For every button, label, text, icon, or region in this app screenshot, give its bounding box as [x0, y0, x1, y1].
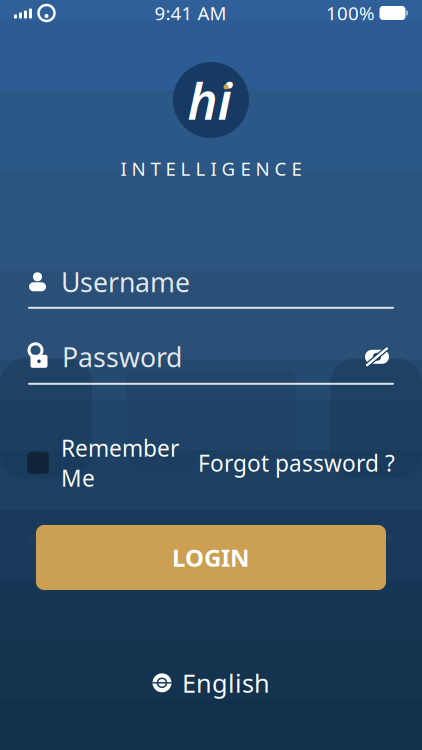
button[interactable]: English	[142, 660, 280, 706]
staticText: 9:41 AM	[154, 1, 226, 25]
staticText: English	[182, 666, 270, 700]
button[interactable]: Forgot password ?	[198, 448, 395, 478]
staticText: LOGIN	[172, 542, 250, 573]
staticText: Password	[62, 339, 182, 374]
staticText: Remember Me	[61, 433, 179, 493]
button[interactable]: Remember Me	[27, 433, 179, 493]
staticText: Forgot password ?	[198, 448, 395, 478]
button[interactable]: Show password	[360, 342, 394, 372]
staticText: I N T E L L I G E N C E	[120, 156, 301, 181]
button[interactable]: LOGIN	[36, 525, 386, 590]
staticText: Username	[61, 264, 190, 299]
staticText: 100%	[326, 1, 375, 25]
staticText: hi	[187, 66, 231, 134]
